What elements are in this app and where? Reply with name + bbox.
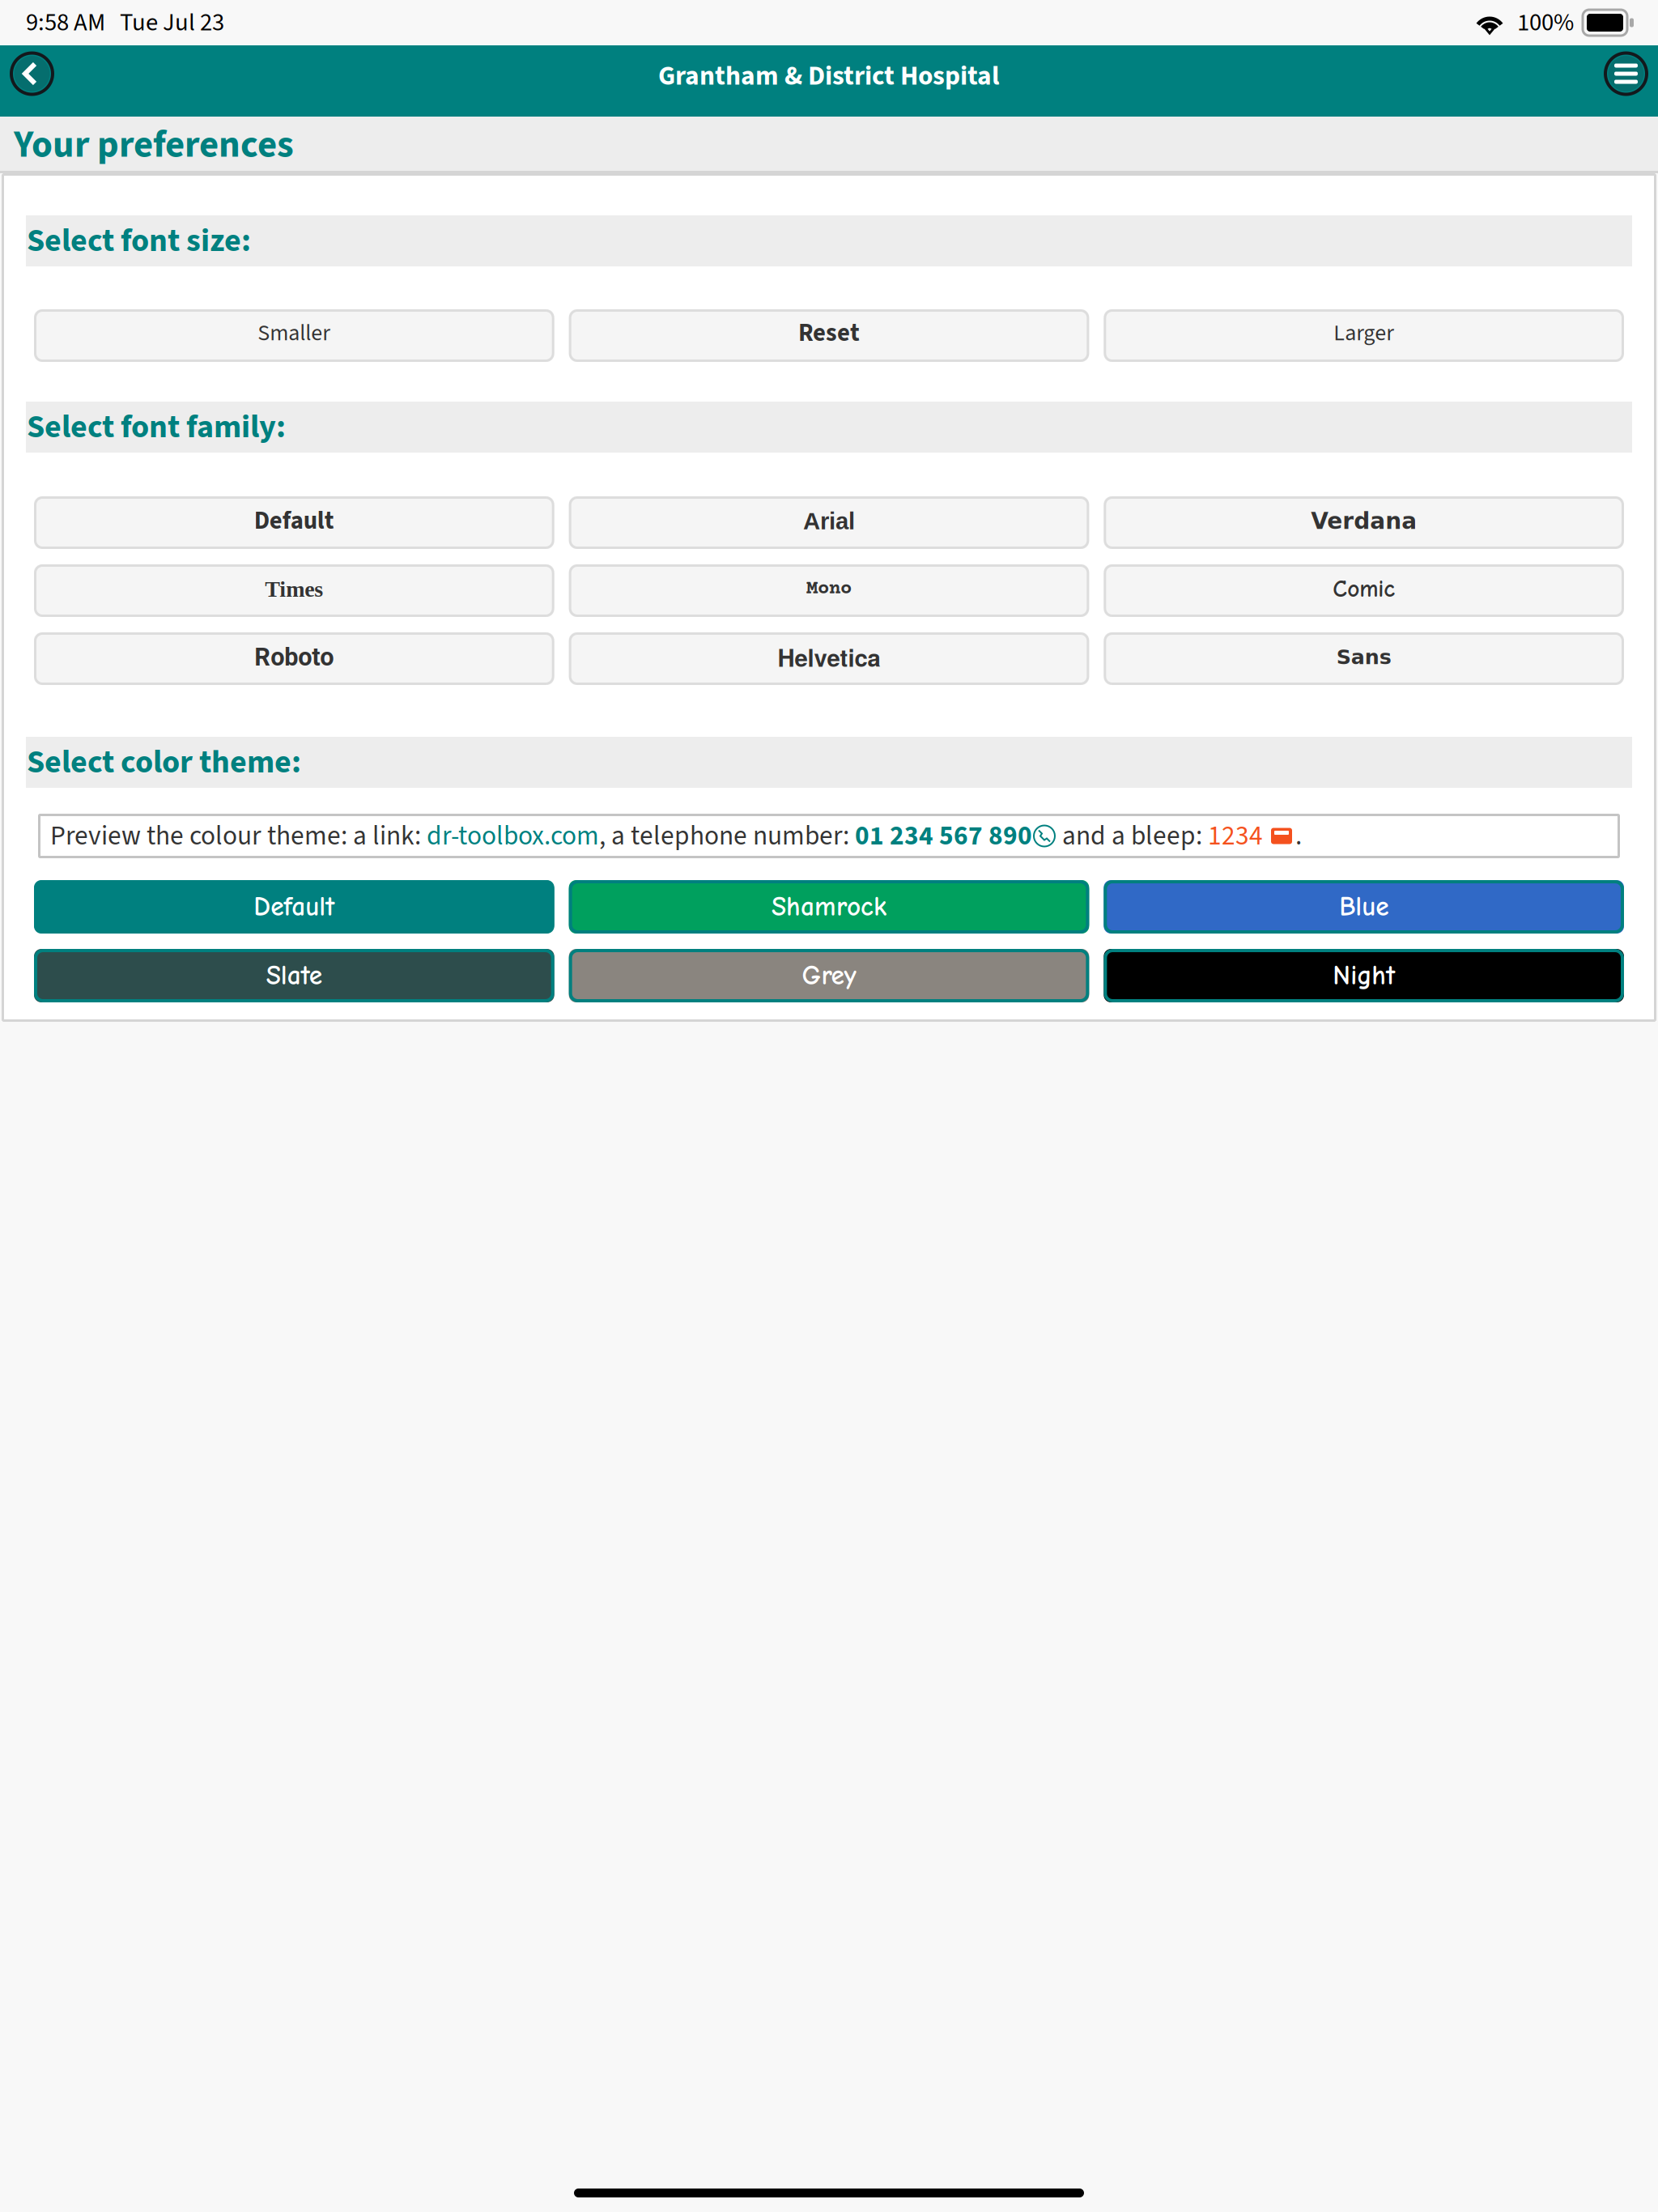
button[interactable]: Slate [34, 949, 554, 1002]
staticText: Blue [1339, 891, 1389, 922]
button[interactable]: Sans [1104, 632, 1624, 685]
staticText: Default [254, 503, 334, 539]
button[interactable]: Comic [1104, 564, 1624, 617]
button[interactable]: Mono [569, 564, 1089, 617]
button[interactable]: Arial [569, 496, 1089, 549]
button[interactable]: Reset [569, 309, 1089, 362]
staticText: Select font size: [27, 218, 251, 264]
staticText: Smaller [258, 317, 331, 349]
staticText: dr-toolbox.com [427, 817, 599, 855]
staticText: Verdana [1311, 508, 1417, 534]
staticText: Slate [266, 960, 322, 991]
staticText: Mono [806, 578, 852, 600]
staticText: 01 234 567 890 [855, 817, 1032, 855]
staticText: Shamrock [772, 891, 886, 922]
button[interactable]: Default [34, 496, 554, 549]
button[interactable]: Menu [1604, 51, 1648, 96]
staticText: , a telephone number: [599, 817, 855, 855]
staticText: Helvetica [778, 640, 880, 674]
staticText: Night [1333, 960, 1395, 991]
staticText: Larger [1334, 317, 1394, 349]
button[interactable]: Smaller [34, 309, 554, 362]
button[interactable]: Times [34, 564, 554, 617]
staticText: Preview the colour theme: a link: [50, 817, 427, 855]
button[interactable]: Back [10, 51, 54, 96]
staticText: Arial [803, 508, 855, 534]
staticText: Your preferences [14, 118, 294, 172]
button[interactable]: Grey [569, 949, 1089, 1002]
button[interactable]: Helvetica [569, 632, 1089, 685]
button[interactable]: Verdana [1104, 496, 1624, 549]
staticText: . [1295, 817, 1302, 855]
button[interactable]: Shamrock [569, 880, 1089, 934]
button[interactable]: Roboto [34, 632, 554, 685]
button[interactable]: Default [34, 880, 554, 934]
staticText: Sans [1336, 645, 1391, 669]
staticText: Roboto [254, 642, 334, 672]
staticText: Grantham & District Hospital [658, 57, 1000, 95]
button[interactable]: Blue [1104, 880, 1624, 934]
staticText: Select font family: [27, 404, 286, 450]
staticText: Grey [802, 960, 856, 991]
staticText: Select color theme: [27, 739, 301, 785]
staticText: Default [254, 891, 335, 922]
staticText: 100% [1517, 5, 1574, 40]
staticText: 1234 [1208, 817, 1263, 855]
staticText: Comic [1333, 575, 1395, 603]
staticText: and a bleep: [1056, 817, 1208, 855]
button[interactable]: Night [1104, 949, 1624, 1002]
button[interactable]: Larger [1104, 309, 1624, 362]
staticText: Times [265, 576, 323, 602]
staticText: 9:58 AM Tue Jul 23 [26, 5, 224, 40]
staticText: Reset [798, 316, 860, 351]
